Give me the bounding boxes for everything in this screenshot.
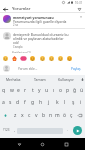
staticText: ş: [72, 99, 75, 106]
button[interactable]: d: [14, 96, 21, 109]
button[interactable]: a: [0, 96, 7, 109]
staticText: memetyurt yorumunuzu: [13, 15, 54, 19]
staticText: j: [48, 99, 50, 106]
button[interactable]: j: [45, 96, 53, 109]
button[interactable]: Period: [65, 124, 71, 135]
button[interactable]: ö: [61, 109, 68, 121]
staticText: l: [64, 99, 66, 106]
button[interactable]: g: [29, 96, 37, 109]
button[interactable]: b: [40, 109, 47, 121]
button[interactable]: More options: [79, 15, 83, 19]
staticText: ğ: [73, 87, 77, 94]
button[interactable]: Surprised: [48, 55, 54, 61]
button[interactable]: memetyurt yorumunuzu: [0, 15, 85, 27]
button[interactable]: denizyenilr Bunuoldual olursaniz bu: [0, 32, 85, 49]
button[interactable]: Kullanıyor: [53, 75, 79, 84]
button[interactable]: Paylaş: [70, 66, 82, 72]
button[interactable]: i: [77, 96, 85, 109]
button[interactable]: l: [61, 96, 69, 109]
button[interactable]: r: [22, 84, 29, 96]
staticText: o: [59, 87, 63, 94]
button[interactable]: Clap: [29, 55, 35, 61]
staticText: d: [16, 99, 20, 106]
button[interactable]: Pink heart: [20, 55, 26, 61]
button[interactable]: k: [53, 96, 61, 109]
staticText: k: [56, 99, 59, 106]
staticText: e: [17, 87, 20, 94]
button[interactable]: z: [11, 109, 19, 121]
staticText: Yorumunuzda ilgili guzelle diyorda: [13, 19, 67, 23]
staticText: .: [67, 127, 69, 132]
button[interactable]: Cevapla: [13, 45, 23, 49]
button[interactable]: Voice input: [79, 75, 85, 84]
button[interactable]: w: [8, 84, 15, 96]
staticText: a: [2, 99, 5, 106]
button[interactable]: Shift: [0, 109, 11, 121]
button[interactable]: ğ: [71, 84, 78, 96]
button[interactable]: v: [33, 109, 40, 121]
staticText: t: [32, 87, 34, 94]
staticText: u: [45, 87, 49, 94]
button[interactable]: Recent apps: [62, 140, 71, 149]
staticText: Merhaba: [6, 77, 21, 82]
staticText: x: [21, 112, 24, 119]
button[interactable]: p: [64, 84, 71, 96]
button[interactable]: y: [36, 84, 43, 96]
button[interactable]: Symbols: [0, 124, 13, 135]
staticText: s: [9, 99, 12, 106]
button[interactable]: Sad: [57, 55, 63, 61]
staticText: i: [80, 99, 82, 106]
button[interactable]: q: [0, 84, 8, 96]
staticText: f: [24, 99, 26, 106]
staticText: Paylaş: [71, 67, 81, 71]
button[interactable]: ı: [50, 84, 57, 96]
staticText: ,: [14, 127, 16, 132]
button[interactable]: Yanitlari gor (2): [12, 51, 85, 53]
staticText: Tamam: [34, 77, 46, 82]
staticText: Yorum ekle...: [18, 67, 70, 71]
staticText: v: [35, 112, 38, 119]
button[interactable]: Send: [73, 126, 82, 135]
button[interactable]: o: [57, 84, 64, 96]
button[interactable]: n: [47, 109, 54, 121]
staticText: ö: [63, 112, 67, 119]
button[interactable]: Pray: [66, 55, 72, 61]
button[interactable]: ç: [68, 109, 75, 121]
button[interactable]: Share: [76, 6, 83, 13]
staticText: z: [14, 112, 17, 119]
staticText: g: [31, 99, 35, 106]
button[interactable]: h: [37, 96, 45, 109]
button[interactable]: u: [43, 84, 50, 96]
staticText: r: [24, 87, 27, 94]
button[interactable]: f: [21, 96, 29, 109]
staticText: Kullanıyor: [58, 77, 74, 82]
button[interactable]: Laugh: [39, 55, 45, 61]
button[interactable]: ü: [78, 84, 85, 96]
button[interactable]: Back: [2, 6, 9, 13]
button[interactable]: c: [26, 109, 33, 121]
staticText: denizyenilr Bunuoldual olursaniz bu: [13, 32, 69, 36]
button[interactable]: Home: [38, 140, 47, 149]
button[interactable]: s: [7, 96, 14, 109]
button[interactable]: Back: [15, 140, 24, 149]
button[interactable]: t: [29, 84, 36, 96]
button[interactable]: m: [54, 109, 61, 121]
button[interactable]: x: [19, 109, 26, 121]
staticText: p: [66, 87, 70, 94]
button[interactable]: Backspace: [75, 109, 85, 121]
staticText: 2 sa: [13, 23, 18, 27]
button[interactable]: Merhaba: [0, 75, 27, 84]
button[interactable]: Tamam: [27, 75, 53, 84]
button[interactable]: ş: [69, 96, 77, 109]
staticText: h: [39, 99, 43, 106]
staticText: w: [10, 87, 14, 94]
button[interactable]: Comma: [12, 124, 18, 135]
button[interactable]: Fire: [11, 55, 17, 61]
button[interactable]: Heart eyes: [2, 55, 8, 61]
staticText: 10:31: [75, 1, 83, 5]
staticText: ı: [53, 87, 55, 94]
staticText: q: [2, 87, 6, 94]
staticText: m: [55, 112, 60, 119]
button[interactable]: e: [15, 84, 22, 96]
